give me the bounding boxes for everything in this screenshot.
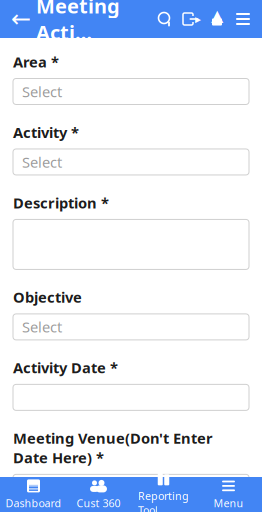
- staticText: Select: [22, 317, 62, 337]
- staticText: Dashboard: [5, 496, 61, 510]
- button[interactable]: Select: [13, 149, 249, 175]
- button[interactable]: Search: [152, 0, 178, 38]
- staticText: Select: [22, 152, 62, 172]
- button[interactable]: [13, 474, 249, 508]
- staticText: Cust 360: [76, 496, 120, 510]
- button[interactable]: Home: [204, 0, 230, 38]
- button[interactable]: Menu: [230, 0, 256, 38]
- button[interactable]: [13, 219, 249, 269]
- staticText: ▲: [211, 6, 223, 25]
- staticText: ▸: [195, 12, 201, 26]
- button[interactable]: Dashboard: [1, 477, 66, 512]
- staticText: Objective: [13, 287, 82, 307]
- button[interactable]: [13, 384, 249, 410]
- button[interactable]: Cust 360: [66, 477, 131, 512]
- staticText: Area *: [13, 52, 59, 71]
- button[interactable]: Reporting Tool: [131, 477, 196, 512]
- button[interactable]: Select: [13, 78, 249, 104]
- button[interactable]: Select: [13, 314, 249, 340]
- button[interactable]: Log out: [178, 0, 204, 38]
- staticText: Activity *: [13, 122, 79, 142]
- staticText: Reporting Tool: [138, 489, 189, 512]
- staticText: Activity Date *: [13, 358, 118, 377]
- staticText: Meeting Acti…: [36, 0, 120, 45]
- staticText: ←: [11, 5, 31, 33]
- button[interactable]: Back: [6, 0, 36, 38]
- staticText: Menu: [213, 496, 243, 510]
- button[interactable]: Menu: [196, 477, 261, 512]
- staticText: Select: [22, 82, 62, 101]
- staticText: Description *: [13, 193, 109, 212]
- staticText: Meeting Venue(Don't Enter Date Here) *: [13, 428, 213, 467]
